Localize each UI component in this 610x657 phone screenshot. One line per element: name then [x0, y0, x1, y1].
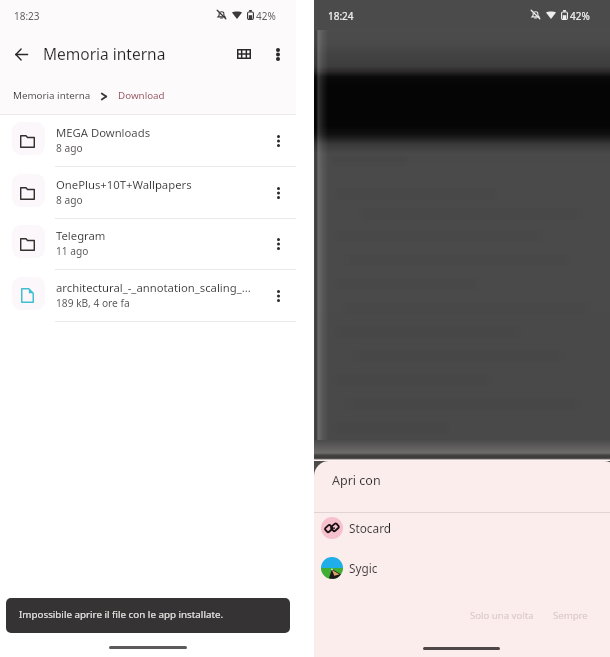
button[interactable]: Sygic — [314, 548, 610, 588]
staticText: Stocard — [349, 520, 392, 536]
staticText: 8 ago — [56, 141, 83, 155]
staticText: Apri con — [332, 472, 381, 489]
staticText: Sempre — [553, 609, 588, 622]
button[interactable]: architectural_-_annotation_scaling_... — [0, 270, 296, 322]
staticText: Memoria interna — [13, 89, 91, 102]
button[interactable]: More options — [262, 38, 294, 70]
button[interactable]: More options — [262, 125, 294, 157]
button[interactable]: OnePlus+10T+Wallpapers — [0, 167, 296, 219]
staticText: MEGA Downloads — [56, 125, 151, 140]
staticText: Solo una volta — [470, 609, 534, 622]
button[interactable]: Telegram — [0, 218, 296, 270]
button[interactable]: Sempre — [547, 603, 594, 628]
staticText: 42% — [570, 9, 590, 23]
button[interactable]: More options — [262, 177, 294, 209]
button[interactable]: MEGA Downloads — [0, 115, 296, 167]
button[interactable]: Impossibile aprire il file con le app in… — [6, 598, 290, 633]
staticText: 8 ago — [56, 193, 83, 207]
button[interactable]: Stocard — [314, 508, 610, 548]
staticText: OnePlus+10T+Wallpapers — [56, 177, 192, 192]
staticText: Impossibile aprire il file con le app in… — [19, 608, 224, 621]
staticText: Memoria interna — [43, 43, 166, 64]
button[interactable]: Memoria interna — [13, 89, 91, 102]
button[interactable]: More options — [262, 228, 294, 260]
button[interactable]: Back — [5, 38, 37, 70]
button[interactable]: More options — [262, 280, 294, 312]
button[interactable]: Grid view — [228, 38, 260, 70]
staticText: Download — [118, 89, 165, 102]
staticText: architectural_-_annotation_scaling_... — [56, 280, 251, 295]
staticText: Telegram — [56, 228, 106, 243]
staticText: 42% — [256, 9, 276, 23]
button[interactable]: Download — [118, 89, 165, 102]
staticText: 11 ago — [56, 244, 89, 258]
staticText: 189 kB, 4 ore fa — [56, 296, 130, 310]
button[interactable]: Solo una volta — [464, 603, 540, 628]
staticText: 18:23 — [14, 9, 40, 23]
staticText: Sygic — [349, 560, 378, 576]
staticText: 18:24 — [328, 9, 354, 23]
